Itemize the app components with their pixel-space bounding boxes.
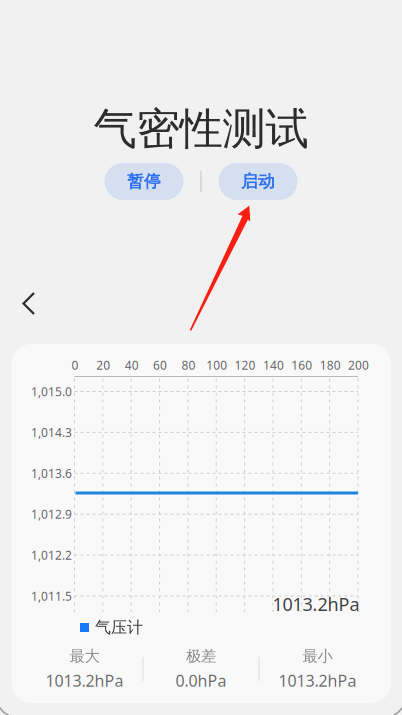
staticText: 最小 xyxy=(302,646,332,666)
staticText: 启动 xyxy=(241,171,275,192)
staticText: 100 xyxy=(206,357,227,373)
staticText: 80 xyxy=(181,357,195,373)
staticText: 60 xyxy=(153,357,167,373)
staticText: 120 xyxy=(235,357,256,373)
staticText: 暂停 xyxy=(127,171,161,192)
staticText: 气密性测试 xyxy=(93,102,308,156)
staticText: 160 xyxy=(291,357,312,373)
staticText: 0 xyxy=(71,357,78,373)
staticText: 1013.2hPa xyxy=(278,670,356,692)
staticText: 1,012.2 xyxy=(31,547,72,563)
staticText: 1,011.5 xyxy=(31,588,72,604)
button[interactable]: Back xyxy=(22,292,36,315)
staticText: 180 xyxy=(320,357,341,373)
staticText: 0.0hPa xyxy=(175,670,226,692)
staticText: 1,013.6 xyxy=(31,465,72,481)
staticText: 气压计 xyxy=(95,617,143,638)
staticText: 1,014.3 xyxy=(31,424,72,440)
staticText: 1013.2hPa xyxy=(272,592,359,616)
staticText: 140 xyxy=(263,357,284,373)
staticText: 20 xyxy=(96,357,110,373)
staticText: 1013.2hPa xyxy=(45,670,123,692)
staticText: 1,012.9 xyxy=(31,506,72,522)
staticText: 40 xyxy=(125,357,139,373)
staticText: 极差 xyxy=(186,646,216,666)
staticText: 1,015.0 xyxy=(31,383,72,400)
staticText: 最大 xyxy=(69,646,99,666)
staticText: 200 xyxy=(348,357,369,373)
button[interactable]: 暂停 xyxy=(104,163,183,200)
button[interactable]: 启动 xyxy=(218,163,297,200)
